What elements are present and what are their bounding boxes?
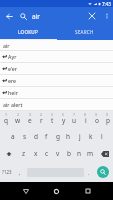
- button[interactable]: Period: [84, 162, 93, 182]
- button[interactable]: 5: [47, 111, 58, 128]
- staticText: 2: [17, 112, 20, 117]
- staticText: d: [34, 132, 38, 141]
- button[interactable]: Clear query: [84, 7, 100, 25]
- button[interactable]: v: [52, 145, 63, 162]
- staticText: o: [95, 116, 99, 125]
- staticText: u: [72, 116, 77, 125]
- staticText: 7:43: [102, 1, 111, 7]
- staticText: SEARCH: [75, 29, 94, 35]
- staticText: y: [62, 116, 66, 125]
- staticText: m: [87, 149, 94, 158]
- staticText: n: [77, 149, 82, 158]
- button[interactable]: 2: [12, 111, 24, 128]
- button[interactable]: 8: [80, 111, 91, 128]
- staticText: 7: [73, 112, 76, 117]
- staticText: ,: [19, 169, 21, 176]
- staticText: air: [32, 12, 41, 21]
- staticText: v: [56, 149, 60, 158]
- button[interactable]: air: [0, 40, 113, 50]
- button[interactable]: Recent apps: [72, 182, 103, 200]
- button[interactable]: 4: [36, 111, 47, 128]
- staticText: j: [79, 132, 81, 141]
- button[interactable]: Comma: [13, 162, 27, 182]
- button[interactable]: Ayr: [0, 51, 113, 62]
- button[interactable]: f: [41, 128, 52, 145]
- button[interactable]: l: [96, 128, 107, 145]
- staticText: t: [51, 116, 54, 125]
- staticText: air alert: [3, 101, 23, 108]
- staticText: .: [88, 169, 90, 176]
- staticText: e'er: [8, 65, 18, 72]
- button[interactable]: d: [30, 128, 41, 145]
- button[interactable]: m: [85, 145, 96, 162]
- button[interactable]: air alert: [0, 99, 113, 110]
- staticText: s: [23, 132, 27, 141]
- staticText: heir: [8, 89, 18, 96]
- staticText: w: [15, 116, 21, 125]
- staticText: a: [11, 132, 15, 141]
- staticText: x: [34, 149, 38, 158]
- button[interactable]: Back: [10, 182, 41, 200]
- staticText: h: [66, 132, 71, 141]
- staticText: LOOKUP: [18, 29, 38, 35]
- button[interactable]: c: [41, 145, 52, 162]
- button[interactable]: More options: [100, 7, 113, 25]
- staticText: air: [3, 42, 10, 49]
- button[interactable]: LOOKUP: [0, 25, 56, 40]
- staticText: i: [85, 116, 87, 125]
- button[interactable]: 7: [69, 111, 80, 128]
- button[interactable]: k: [85, 128, 96, 145]
- staticText: p: [106, 116, 110, 125]
- button[interactable]: e'er: [0, 63, 113, 74]
- button[interactable]: b: [63, 145, 74, 162]
- button[interactable]: s: [19, 128, 30, 145]
- staticText: b: [67, 149, 71, 158]
- staticText: e: [28, 116, 32, 125]
- button[interactable]: j: [74, 128, 85, 145]
- button[interactable]: g: [52, 128, 63, 145]
- staticText: 6: [62, 112, 65, 117]
- button[interactable]: a: [7, 128, 19, 145]
- button[interactable]: z: [18, 145, 30, 162]
- staticText: q: [4, 116, 8, 125]
- button[interactable]: 6: [58, 111, 69, 128]
- button[interactable]: heir: [0, 87, 113, 98]
- staticText: Ayr: [8, 53, 17, 60]
- button[interactable]: ?123: [0, 162, 13, 182]
- button[interactable]: 9: [91, 111, 102, 128]
- staticText: 5: [51, 112, 54, 117]
- button[interactable]: SEARCH: [56, 25, 113, 40]
- button[interactable]: Delete: [96, 145, 113, 162]
- staticText: ere: [8, 77, 17, 84]
- button[interactable]: n: [74, 145, 85, 162]
- staticText: 1: [5, 112, 8, 117]
- button[interactable]: Search: [97, 166, 109, 178]
- staticText: ?123: [2, 169, 12, 175]
- staticText: g: [56, 132, 60, 141]
- button[interactable]: Navigate up: [0, 7, 18, 25]
- button[interactable]: ere: [0, 75, 113, 86]
- button[interactable]: h: [63, 128, 74, 145]
- staticText: l: [101, 132, 103, 141]
- button[interactable]: 0: [102, 111, 113, 128]
- staticText: 4: [40, 112, 43, 117]
- staticText: r: [40, 116, 43, 125]
- staticText: 9: [95, 112, 98, 117]
- staticText: 3: [29, 112, 32, 117]
- button[interactable]: 3: [24, 111, 36, 128]
- staticText: k: [89, 132, 93, 141]
- staticText: f: [45, 132, 48, 141]
- button[interactable]: Home: [41, 182, 72, 200]
- button[interactable]: Shift: [0, 145, 18, 162]
- button[interactable]: 1: [0, 111, 12, 128]
- staticText: z: [22, 149, 26, 158]
- staticText: 0: [106, 112, 109, 117]
- button[interactable]: x: [30, 145, 41, 162]
- staticText: 8: [84, 112, 87, 117]
- staticText: c: [45, 149, 49, 158]
